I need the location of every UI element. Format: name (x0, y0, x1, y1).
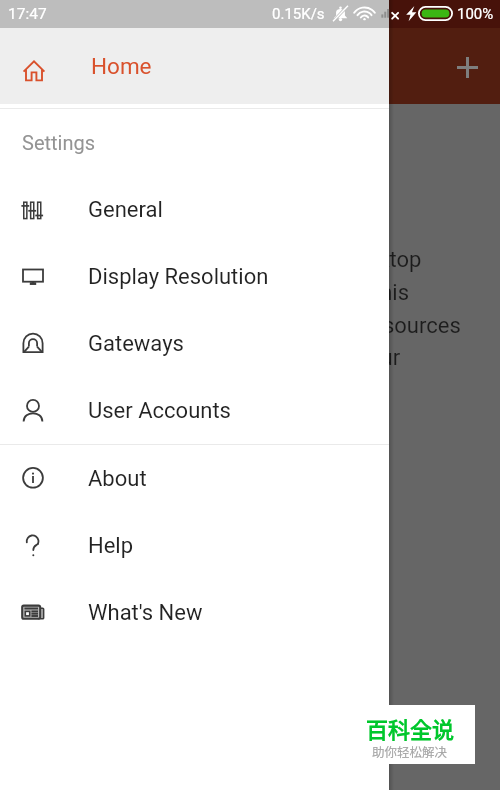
staticText: 17:47 (8, 5, 47, 23)
staticText: About (88, 466, 147, 492)
button[interactable]: Add (446, 45, 488, 87)
button[interactable]: Display Resolution (0, 243, 389, 310)
staticText: 助你轻松解决 (372, 742, 448, 760)
staticText: Help (88, 533, 134, 559)
staticText: 100% (457, 5, 494, 23)
staticText: What's New (88, 600, 203, 626)
staticText: Display Resolution (88, 264, 269, 290)
button[interactable]: General (0, 176, 389, 243)
staticText: Settings (22, 131, 96, 154)
button[interactable]: Home (0, 28, 389, 104)
button[interactable]: About (0, 445, 389, 512)
staticText: our (368, 345, 401, 371)
staticText: 百科全说 (366, 712, 455, 744)
button[interactable]: What's New (0, 579, 389, 646)
staticText: User Accounts (88, 398, 231, 424)
staticText: Home (91, 53, 152, 79)
button[interactable]: Help (0, 512, 389, 579)
staticText: Gateways (88, 331, 184, 357)
button[interactable]: User Accounts (0, 377, 389, 444)
staticText: resources (364, 313, 461, 339)
staticText: 0.15K/s (272, 5, 325, 23)
staticText: desktop (343, 247, 422, 273)
button[interactable]: Gateways (0, 310, 389, 377)
staticText: General (88, 197, 163, 223)
staticText: this (373, 280, 410, 306)
